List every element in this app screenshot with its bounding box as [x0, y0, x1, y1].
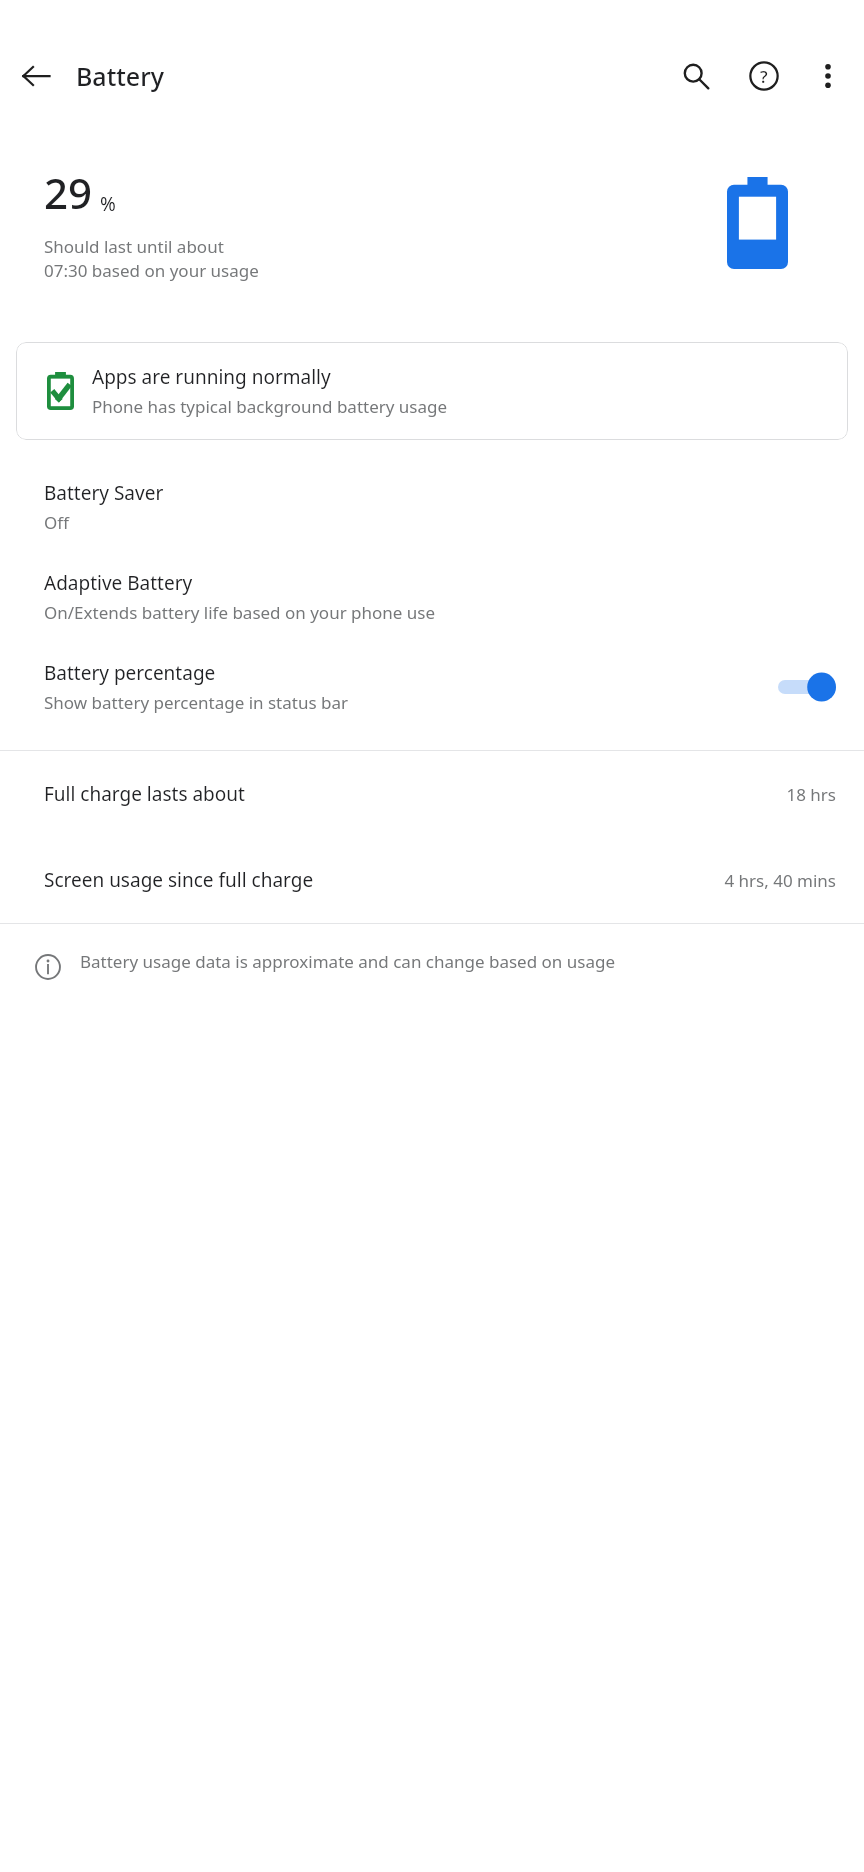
button[interactable]: Battery percentage toggle, on [778, 669, 836, 705]
button[interactable]: Battery percentage [0, 654, 864, 720]
button[interactable]: Screen usage since full charge [0, 837, 864, 923]
staticText: Screen usage since full charge [44, 867, 398, 893]
staticText: Full charge lasts about [44, 781, 786, 807]
button[interactable]: Adaptive Battery [0, 564, 864, 630]
staticText: Battery Saver [44, 480, 164, 506]
button[interactable]: Search [668, 48, 724, 104]
staticText: Battery percentage [44, 660, 216, 686]
staticText: ? [760, 65, 768, 88]
button[interactable]: More options [800, 48, 856, 104]
staticText: Off [44, 511, 69, 534]
staticText: Battery usage data is approximate and ca… [80, 950, 616, 973]
staticText: Show battery percentage in status bar [44, 691, 348, 714]
staticText: 18 hrs [786, 783, 836, 806]
button[interactable]: Help [736, 48, 792, 104]
staticText: Battery [76, 59, 164, 93]
button[interactable]: Full charge lasts about [0, 751, 864, 837]
staticText: 4 hrs, 40 mins [724, 869, 836, 892]
staticText: On/Extends battery life based on your ph… [44, 601, 436, 624]
button[interactable]: Battery Saver [0, 474, 864, 540]
button[interactable]: Back [8, 48, 64, 104]
button[interactable]: Apps are running normally [16, 342, 848, 440]
staticText: Phone has typical background battery usa… [92, 395, 448, 418]
staticText: Should last until about 07:30 based on y… [44, 235, 259, 282]
staticText: 29 [44, 164, 93, 221]
staticText: Adaptive Battery [44, 570, 193, 596]
staticText: Apps are running normally [92, 364, 331, 390]
staticText: % [100, 191, 116, 217]
